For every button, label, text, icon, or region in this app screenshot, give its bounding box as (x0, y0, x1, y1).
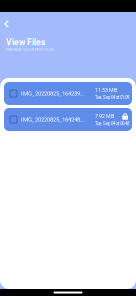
button[interactable]: Back (0, 16, 13, 32)
staticText: IMG_20220825_164239… (21, 90, 84, 97)
staticText: View Files (6, 37, 45, 47)
staticText: IMG_20220825_164248… (21, 116, 84, 123)
button[interactable]: IMG_20220825_164239… (4, 82, 132, 105)
staticText: PREVIEW YOUR PDF FILES (6, 47, 54, 52)
staticText: 11.53 MB (95, 87, 117, 93)
staticText: 7.92 MB (95, 113, 114, 119)
staticText: Tue, Sep 04 at 01:09 (95, 95, 129, 100)
staticText: Tue, Sep 04 at 00:48 (95, 121, 129, 126)
button[interactable]: IMG_20220825_164248… (4, 108, 132, 131)
